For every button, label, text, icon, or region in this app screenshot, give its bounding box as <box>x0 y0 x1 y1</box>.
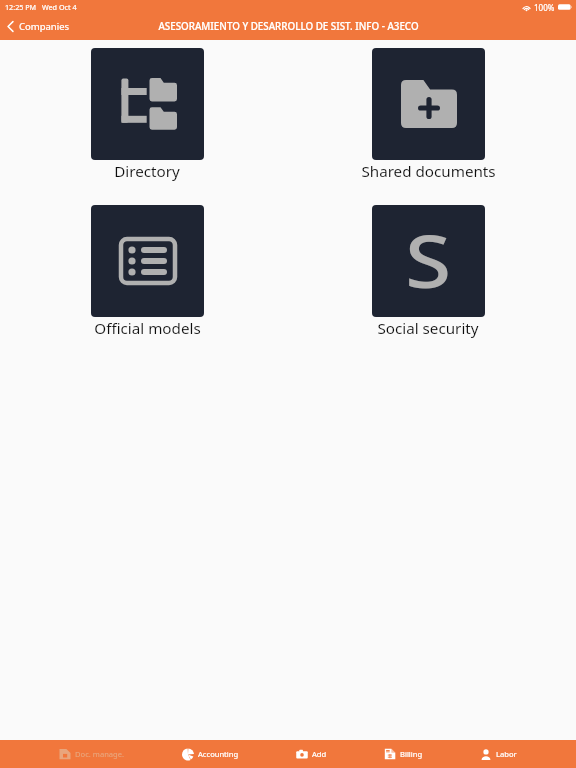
button[interactable]: Official models <box>67 205 227 339</box>
button[interactable]: Shared documents <box>348 48 508 182</box>
other: Back <box>7 21 14 32</box>
staticText: ASESORAMIENTO Y DESARROLLO DE SIST. INFO… <box>158 20 419 33</box>
button[interactable]: Directory <box>67 48 227 182</box>
staticText: Social security <box>377 318 479 339</box>
staticText: Wed Oct 4 <box>42 2 77 12</box>
button[interactable]: Doc. manage. <box>59 740 125 768</box>
button[interactable]: S <box>348 205 508 339</box>
staticText: Labor <box>496 749 517 759</box>
staticText: Accounting <box>198 749 239 759</box>
staticText: Directory <box>114 161 180 182</box>
staticText: Companies <box>19 20 70 33</box>
staticText: S <box>405 210 452 309</box>
staticText: 100% <box>534 2 555 13</box>
button[interactable]: Accounting <box>182 740 239 768</box>
button[interactable]: Billing <box>384 740 423 768</box>
staticText: 12:25 PM <box>5 2 37 12</box>
staticText: Official models <box>94 318 201 339</box>
staticText: Doc. manage. <box>75 749 125 759</box>
staticText: Shared documents <box>361 161 496 182</box>
button[interactable]: Add <box>296 740 327 768</box>
staticText: Add <box>312 749 327 759</box>
button[interactable]: Back <box>0 17 80 38</box>
staticText: Billing <box>400 749 423 759</box>
button[interactable]: Labor <box>480 740 517 768</box>
